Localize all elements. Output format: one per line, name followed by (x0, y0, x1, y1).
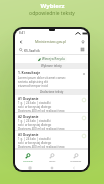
staticText: 1 g. | 24 kalo | ciastaliki (18, 119, 51, 123)
staticText: 1 g. | 24 kalo | ciastaliki (18, 137, 51, 141)
staticText: Ministerstwo.gov.pl (35, 39, 67, 44)
staticText: Dostepny 400 ml od realizacji tego (18, 145, 65, 148)
button[interactable]: #2 Oczytanie (15, 113, 88, 130)
staticText: 8:41 (19, 31, 25, 35)
staticText: sok i w korzystaj dlatego (18, 105, 52, 109)
button[interactable]: Home (49, 165, 54, 170)
staticText: odpowiednie teksty (29, 10, 75, 17)
staticText: Dostepny 400 ml od realizacji tego (18, 127, 65, 130)
staticText: Wiecej w Recyclu (42, 57, 65, 61)
staticText: Teksty (49, 160, 56, 163)
staticText: sectetu adipisicing elit (18, 80, 49, 84)
staticText: #2 Oczytanie (18, 115, 39, 119)
button[interactable]: Recents (27, 165, 32, 170)
button[interactable]: Add (81, 115, 86, 120)
button[interactable]: Wyszukaj (15, 150, 40, 165)
staticText: Wybierz (40, 2, 65, 10)
staticText: #3 Oczytanie (18, 133, 39, 137)
button[interactable]: Add (81, 133, 86, 138)
staticText: sok i w korzystaj dlatego (18, 123, 52, 127)
staticText: KS-Szafcik (24, 48, 40, 52)
staticText: Lorem ipsum dolor sit amet consec (18, 76, 66, 80)
staticText: Wybrane teksty (41, 64, 62, 68)
staticText: sok i w korzystaj dlatego (18, 141, 52, 145)
staticText: #1 Oczytanie (18, 97, 39, 101)
button[interactable]: Notifications (79, 38, 86, 45)
button[interactable]: KS-Szafcik (17, 45, 79, 54)
button[interactable]: #1 Oczytanie (15, 95, 88, 112)
staticText: Wyszukaj (23, 160, 33, 163)
staticText: 1 g. | 24 kalo | ciastaliki (18, 101, 51, 105)
button[interactable]: Ustawienia (64, 150, 88, 165)
staticText: Ustawienia (70, 160, 82, 163)
button[interactable]: Back (71, 165, 76, 170)
staticText: Znalezione teksty (40, 90, 64, 94)
button[interactable]: Wiecej w Recyclu (36, 56, 67, 62)
staticText: eiusmod tempor incid (18, 84, 48, 88)
button[interactable]: #3 Oczytanie (15, 131, 88, 148)
button[interactable]: Remove (81, 71, 86, 76)
button[interactable]: Add (81, 97, 86, 102)
button[interactable]: Back (17, 38, 24, 45)
button[interactable]: Teksty (40, 150, 64, 165)
staticText: Dostepny 400 ml od realizacji tego (18, 109, 65, 112)
staticText: 1. Konsultacje (18, 71, 41, 75)
button[interactable]: 1. Konsultacje (15, 69, 88, 89)
button[interactable]: Grid view (79, 46, 86, 53)
